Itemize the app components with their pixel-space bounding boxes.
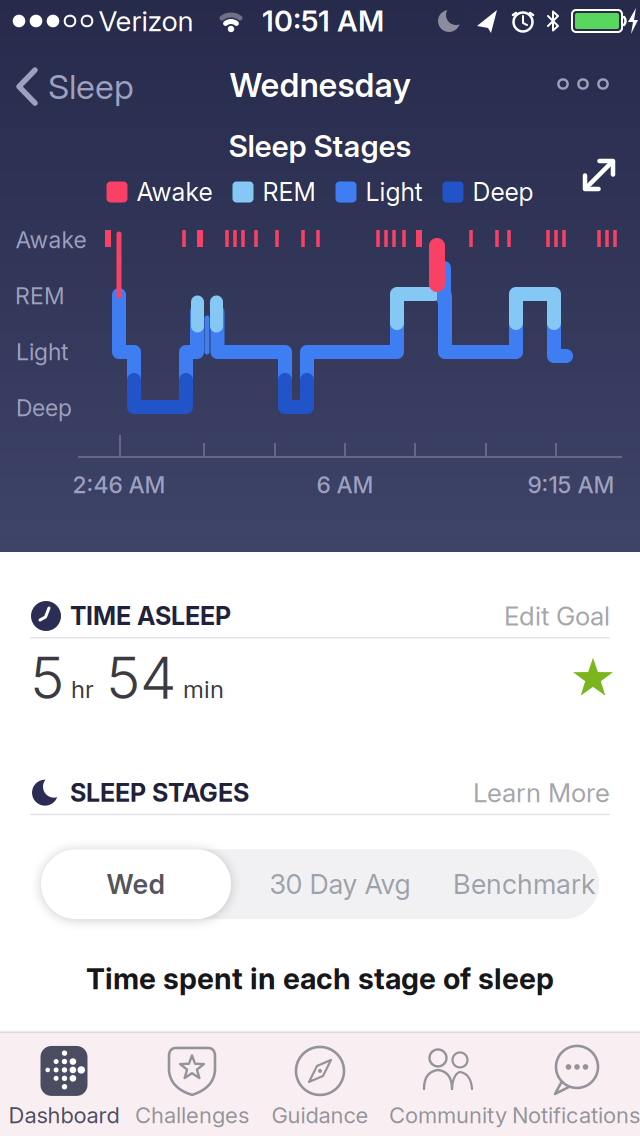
staticText: hr — [71, 675, 94, 704]
staticText: Challenges — [135, 1102, 249, 1128]
staticText: Awake — [15, 226, 86, 254]
staticText: SLEEP STAGES — [70, 778, 249, 808]
button[interactable]: Learn More — [473, 777, 610, 808]
button[interactable] — [583, 159, 615, 191]
button[interactable]: Sleep — [16, 66, 134, 107]
button[interactable]: Guidance — [256, 1045, 384, 1128]
staticText: TIME ASLEEP — [70, 601, 231, 631]
button[interactable] — [557, 78, 609, 90]
staticText: 5 — [30, 642, 64, 713]
staticText: Verizon — [98, 4, 193, 38]
staticText: Time spent in each stage of sleep — [86, 961, 554, 996]
staticText: Learn More — [473, 777, 610, 808]
staticText: Community — [389, 1102, 507, 1128]
button[interactable]: Notifications — [512, 1045, 640, 1128]
button[interactable]: 30 Day Avg — [231, 849, 449, 919]
staticText: 6 AM — [316, 471, 373, 499]
staticText: Deep — [16, 394, 72, 422]
staticText: Guidance — [271, 1102, 368, 1128]
staticText: 54 — [106, 642, 176, 713]
button[interactable]: Benchmark — [449, 849, 599, 919]
button[interactable]: Wed — [41, 849, 231, 919]
staticText: Sleep Stages — [228, 128, 411, 164]
staticText: Wed — [106, 868, 165, 900]
button[interactable]: Edit Goal — [504, 600, 610, 632]
staticText: Wednesday — [229, 65, 410, 105]
staticText: Light — [365, 177, 422, 207]
staticText: Notifications — [512, 1102, 640, 1128]
button[interactable]: Challenges — [128, 1045, 256, 1128]
staticText: Sleep — [48, 66, 134, 107]
staticText: 10:51 AM — [262, 3, 384, 39]
staticText: Benchmark — [453, 868, 595, 900]
staticText: Awake — [136, 177, 212, 207]
staticText: Light — [16, 338, 68, 366]
staticText: 2:46 AM — [72, 471, 165, 499]
staticText: 30 Day Avg — [269, 868, 410, 900]
staticText: Edit Goal — [504, 600, 610, 632]
staticText: Deep — [472, 177, 533, 207]
staticText: REM — [262, 177, 315, 207]
button[interactable]: Community — [384, 1045, 512, 1128]
staticText: min — [183, 675, 224, 704]
staticText: REM — [15, 282, 65, 310]
button[interactable]: Dashboard — [0, 1045, 128, 1128]
staticText: Dashboard — [8, 1102, 119, 1128]
staticText: 9:15 AM — [527, 471, 614, 499]
